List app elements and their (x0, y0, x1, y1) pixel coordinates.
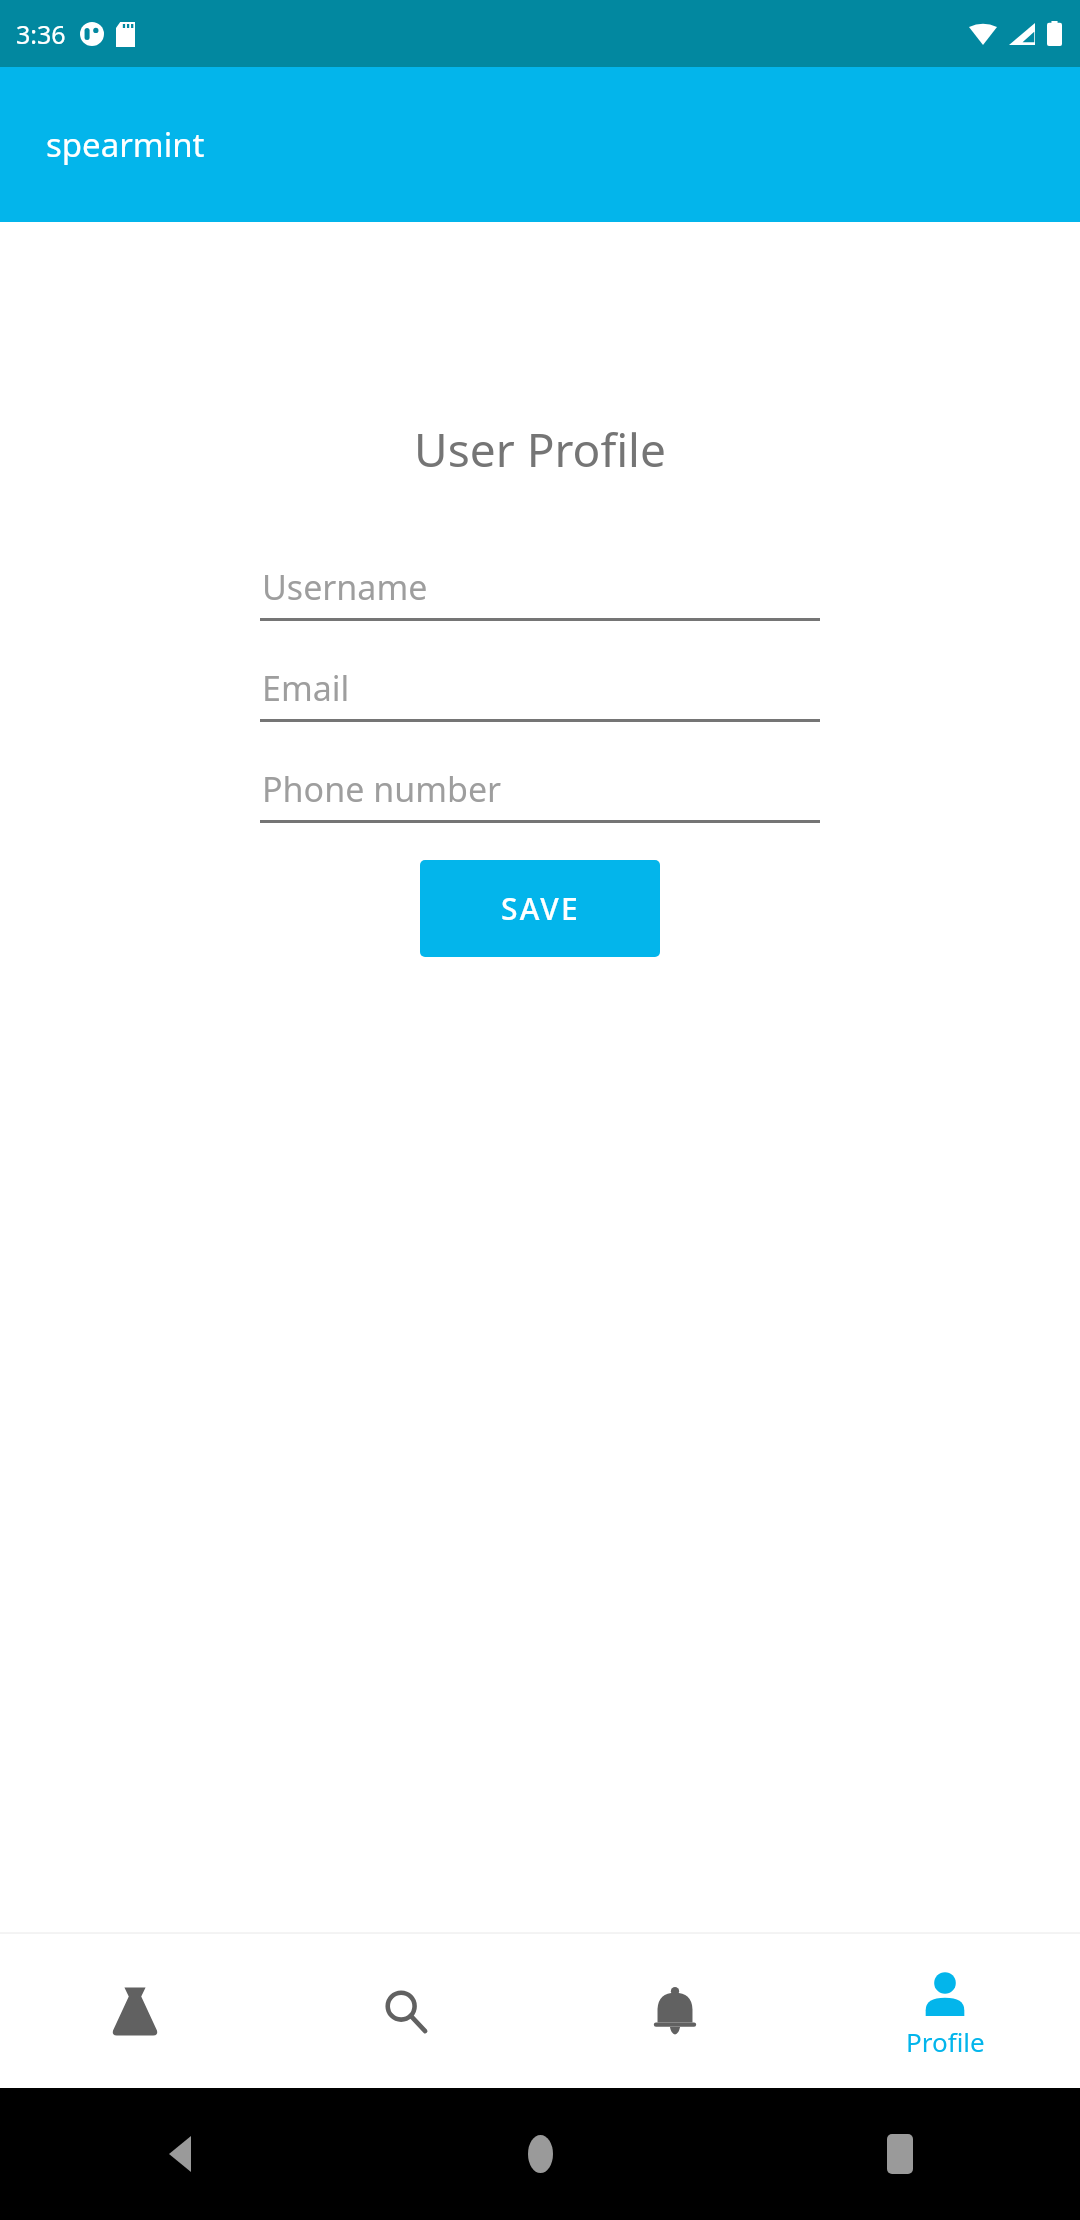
staticText: Phone number (262, 766, 502, 812)
button[interactable]: Phone number (260, 758, 820, 823)
button[interactable]: Search (270, 1934, 540, 2088)
button[interactable]: Profile (810, 1934, 1080, 2088)
staticText: 3:36 (16, 17, 66, 51)
button[interactable]: Back (0, 2088, 360, 2220)
button[interactable]: Home (360, 2088, 720, 2220)
button[interactable]: SAVE (420, 860, 660, 957)
button[interactable]: Recent apps (720, 2088, 1080, 2220)
staticText: User Profile (414, 418, 666, 481)
staticText: SAVE (501, 888, 580, 929)
button[interactable]: Notifications (540, 1934, 810, 2088)
button[interactable]: Experiments (0, 1934, 270, 2088)
staticText: Email (262, 665, 350, 711)
staticText: spearmint (46, 122, 205, 167)
button[interactable]: Email (260, 657, 820, 722)
staticText: Username (262, 564, 428, 610)
button[interactable]: Username (260, 556, 820, 621)
staticText: Profile (906, 2024, 985, 2059)
